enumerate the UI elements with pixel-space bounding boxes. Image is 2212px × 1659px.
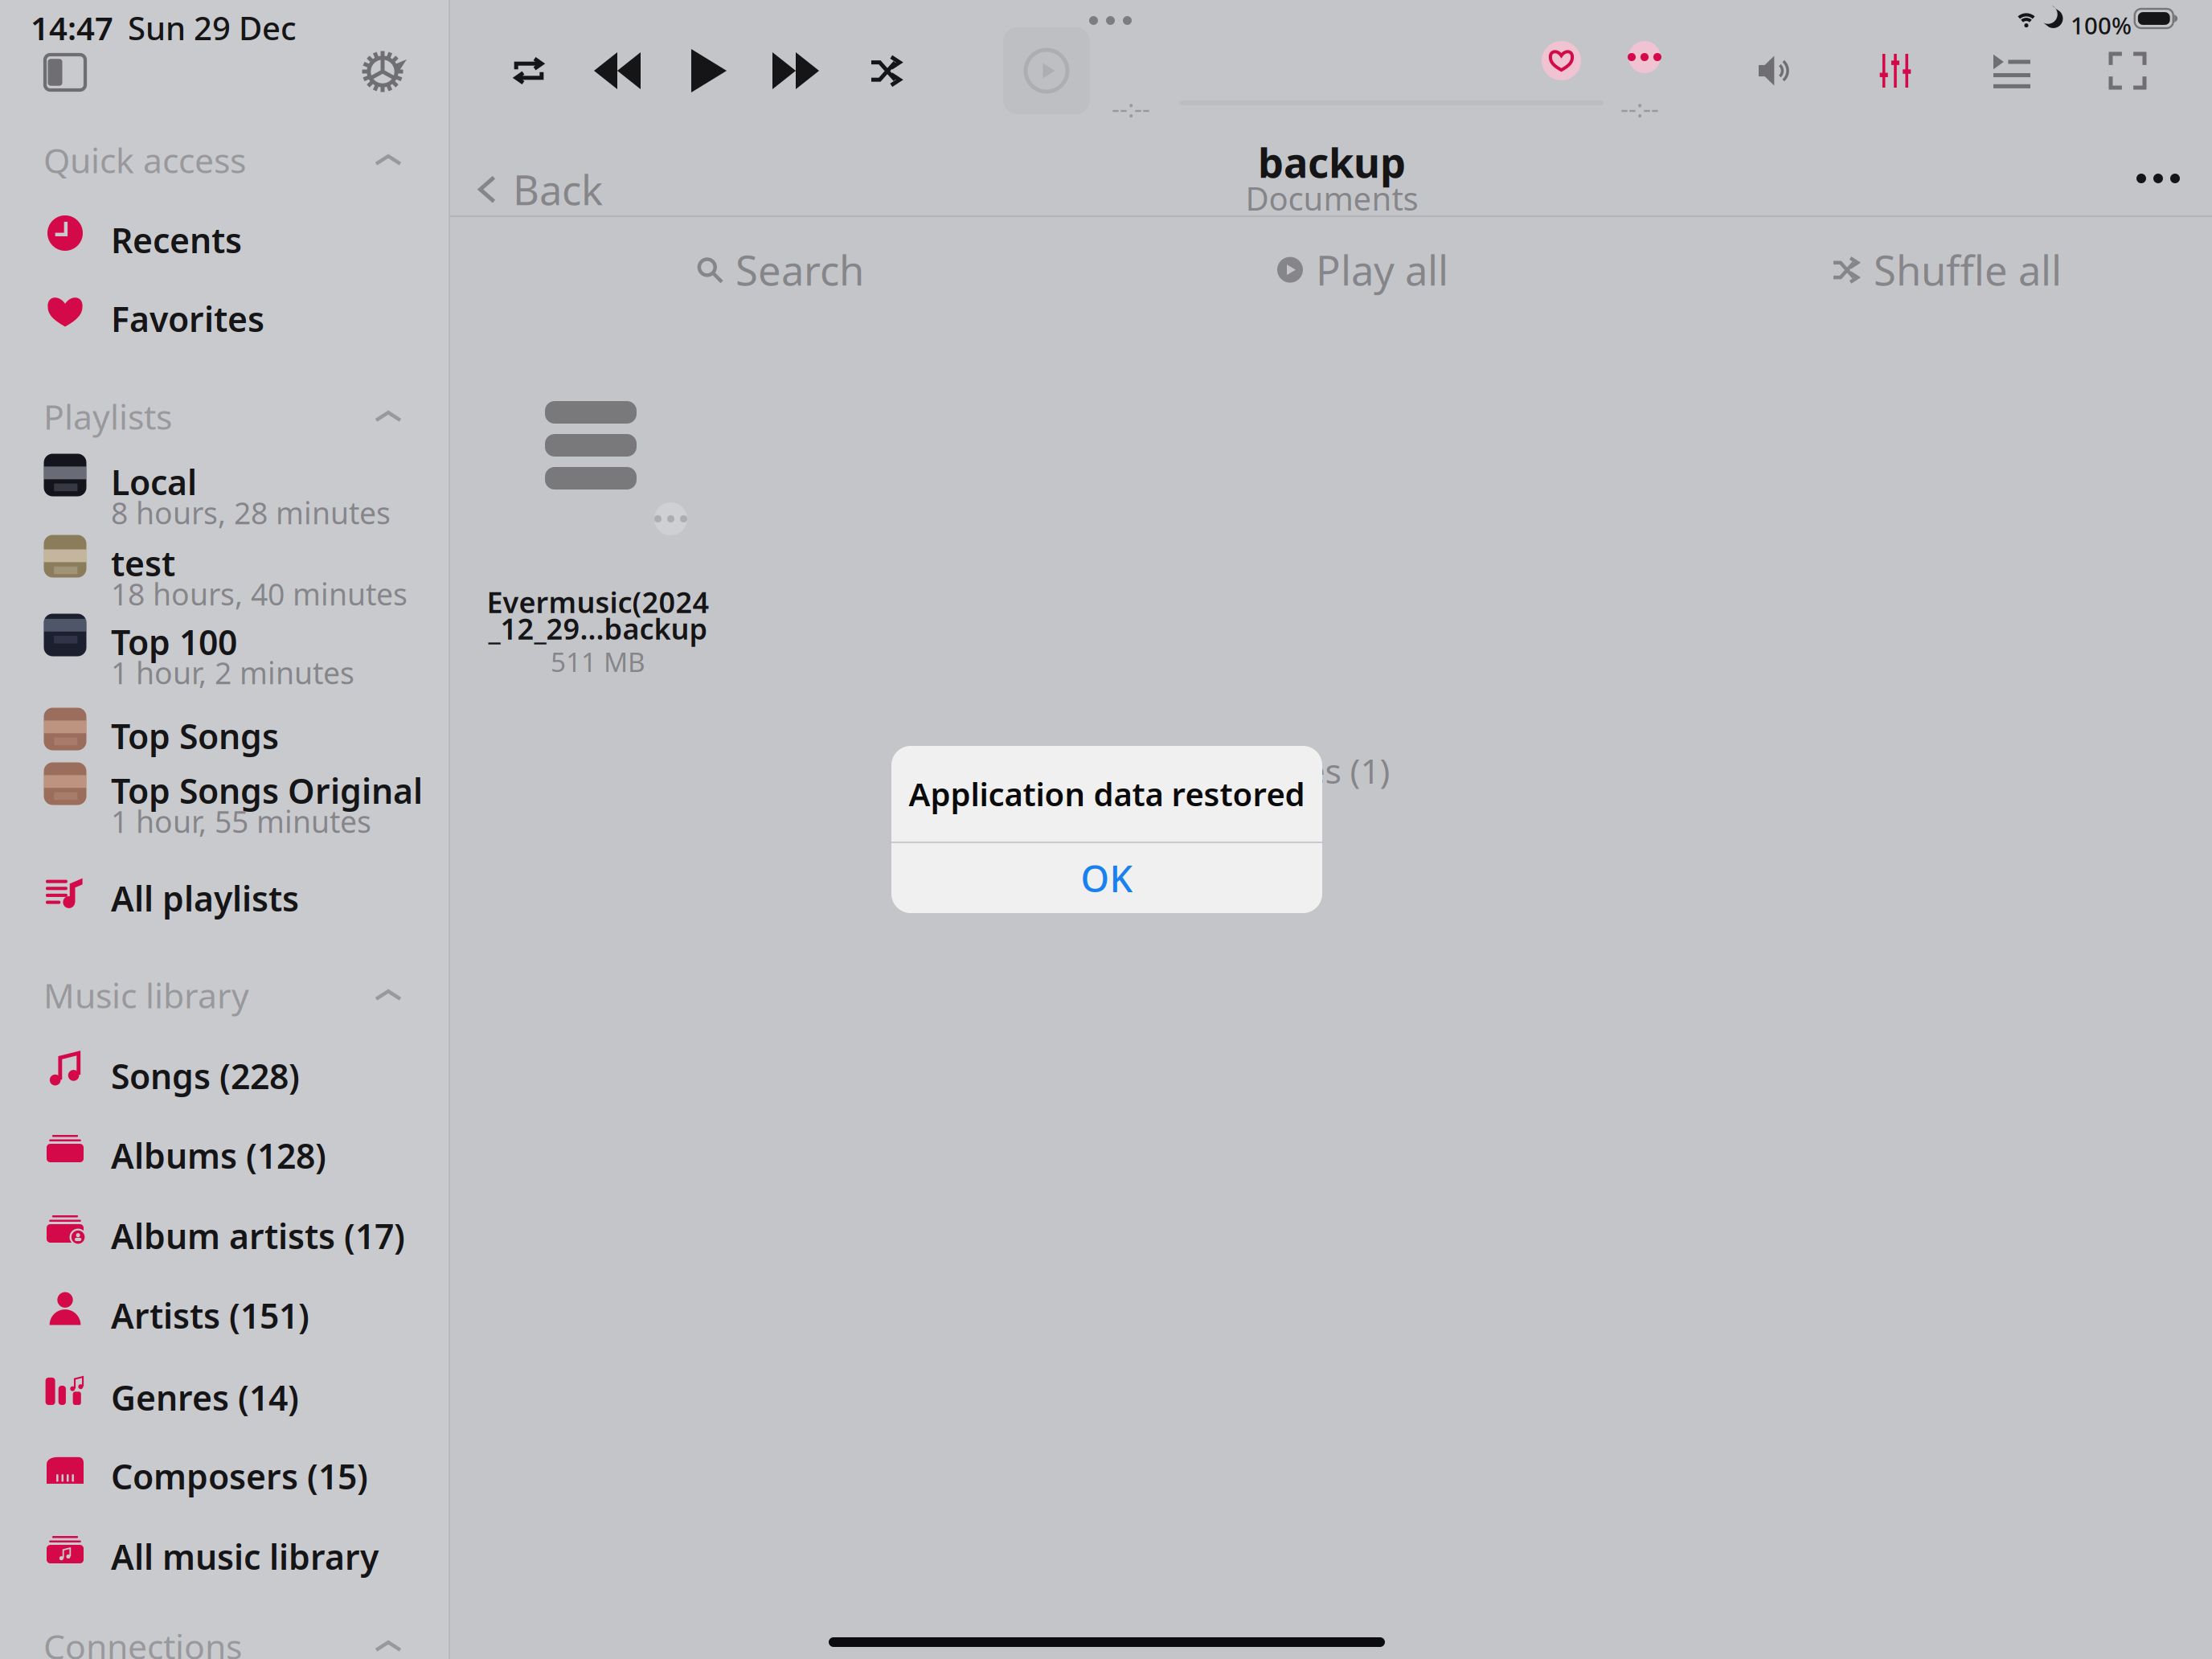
button[interactable]: Local xyxy=(0,436,449,517)
button[interactable]: Search xyxy=(686,230,875,310)
button[interactable]: Top Songs xyxy=(0,690,449,771)
button[interactable]: Favorites xyxy=(0,273,449,354)
button[interactable]: Shuffle xyxy=(871,55,903,87)
staticText: --:-- xyxy=(1112,92,1150,124)
staticText: _12_29...backup xyxy=(488,609,708,648)
staticText: Evermusic(2024 xyxy=(487,583,709,621)
button[interactable]: Recents xyxy=(0,195,449,275)
button[interactable]: Quick access xyxy=(0,138,449,182)
staticText: Sun 29 Dec xyxy=(128,6,297,49)
staticText: OK xyxy=(1081,854,1133,902)
staticText: Back xyxy=(513,162,603,216)
staticText: Composers (15) xyxy=(111,1453,368,1499)
button[interactable]: Shuffle all xyxy=(1822,230,2073,310)
button[interactable]: Play xyxy=(691,49,727,92)
button[interactable]: All music library xyxy=(0,1511,449,1591)
staticText: 18 hours, 40 minutes xyxy=(111,574,408,614)
button[interactable]: Play all xyxy=(1266,230,1460,310)
button[interactable]: Albums (128) xyxy=(0,1110,449,1190)
button[interactable]: Playback queue xyxy=(1993,52,2030,89)
button[interactable]: OK xyxy=(891,843,1322,913)
button[interactable]: Previous track xyxy=(594,52,641,89)
button[interactable]: All playlists xyxy=(0,853,449,933)
button[interactable]: Album artists (17) xyxy=(0,1190,449,1271)
staticText: Playlists xyxy=(43,394,172,439)
staticText: Album artists (17) xyxy=(111,1213,405,1258)
staticText: Recents xyxy=(111,217,242,263)
staticText: test xyxy=(111,540,175,586)
staticText: Songs (228) xyxy=(111,1053,300,1099)
staticText: --:-- xyxy=(1620,92,1659,124)
button[interactable]: test xyxy=(0,518,449,598)
staticText: 14:47 xyxy=(31,6,113,49)
staticText: All music library xyxy=(111,1534,379,1579)
button[interactable]: More options xyxy=(1616,41,1673,73)
button[interactable]: Connections xyxy=(0,1624,449,1659)
button[interactable]: Equalizer xyxy=(1878,54,1912,88)
staticText: Local xyxy=(111,459,197,505)
button[interactable]: Repeat xyxy=(511,53,547,88)
button[interactable]: Top Songs Original xyxy=(0,745,449,825)
button[interactable]: Full screen xyxy=(2111,54,2144,88)
staticText: Top 100 xyxy=(111,619,237,664)
button[interactable]: Back xyxy=(460,153,617,226)
button[interactable]: Hide sidebar xyxy=(45,55,85,90)
button[interactable]: Playlists xyxy=(0,395,449,438)
button[interactable]: Volume xyxy=(1759,53,1794,88)
staticText: 511 MB xyxy=(551,644,645,679)
staticText: Genres (14) xyxy=(111,1374,299,1420)
button[interactable]: Settings xyxy=(362,51,403,92)
button[interactable]: Next track xyxy=(772,52,819,89)
staticText: 100% xyxy=(2071,10,2132,41)
button[interactable]: Favorite xyxy=(1542,41,1581,80)
staticText: Connections xyxy=(43,1623,242,1659)
staticText: 1 hour, 55 minutes xyxy=(111,801,371,841)
button[interactable]: Evermusic(2024_12_29…backup, 511 MB xyxy=(498,367,698,688)
button[interactable]: Genres (14) xyxy=(0,1352,449,1432)
button[interactable]: Folder options xyxy=(2117,154,2199,203)
button[interactable]: Songs (228) xyxy=(0,1030,449,1111)
staticText: Files (1) xyxy=(1270,748,1390,793)
staticText: Application data restored xyxy=(909,772,1305,815)
staticText: Albums (128) xyxy=(111,1133,326,1178)
staticText: Shuffle all xyxy=(1874,243,2062,297)
staticText: backup xyxy=(1258,135,1406,189)
staticText: Favorites xyxy=(111,296,264,341)
button[interactable]: Artists (151) xyxy=(0,1270,449,1350)
staticText: Documents xyxy=(1245,177,1418,220)
button[interactable]: File options xyxy=(641,502,700,535)
staticText: 8 hours, 28 minutes xyxy=(111,493,391,533)
staticText: Quick access xyxy=(43,137,246,183)
staticText: Top Songs xyxy=(111,713,279,759)
button[interactable]: Music library xyxy=(0,973,449,1017)
staticText: Search xyxy=(735,243,864,297)
staticText: All playlists xyxy=(111,875,299,921)
staticText: 1 hour, 2 minutes xyxy=(111,653,354,693)
button[interactable]: Composers (15) xyxy=(0,1431,449,1511)
staticText: Top Songs Original xyxy=(111,768,423,813)
button[interactable]: Top 100 xyxy=(0,596,449,677)
staticText: Artists (151) xyxy=(111,1292,309,1338)
staticText: Music library xyxy=(43,972,249,1018)
staticText: Play all xyxy=(1316,243,1448,297)
